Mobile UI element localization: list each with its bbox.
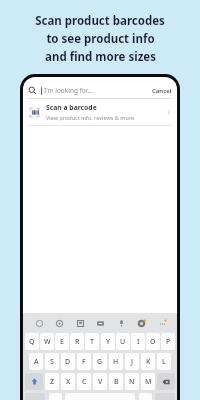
- button[interactable]: K: [141, 353, 155, 370]
- staticText: Scan a barcode: [46, 103, 97, 112]
- staticText: J: [131, 357, 134, 367]
- staticText: Y: [106, 337, 111, 347]
- button[interactable]: Backspace: [157, 373, 175, 390]
- staticText: I: [137, 337, 140, 347]
- button[interactable]: X: [61, 373, 75, 390]
- button[interactable]: Voice input: [114, 316, 128, 330]
- button[interactable]: Stickers: [73, 316, 87, 330]
- button[interactable]: R: [70, 333, 84, 350]
- staticText: B: [114, 377, 119, 387]
- button[interactable]: E: [55, 333, 69, 350]
- button[interactable]: M: [141, 373, 155, 390]
- button[interactable]: Scan a barcode: [28, 99, 172, 125]
- button[interactable]: C: [77, 373, 91, 390]
- button[interactable]: V: [93, 373, 107, 390]
- button[interactable]: T: [85, 333, 99, 350]
- button[interactable]: U: [116, 333, 130, 350]
- staticText: and find more sizes: [45, 49, 156, 65]
- button[interactable]: Shift: [25, 373, 43, 390]
- staticText: N: [129, 377, 135, 387]
- staticText: View product info, reviews & more: [46, 114, 135, 121]
- button[interactable]: Voice typing: [32, 316, 46, 330]
- staticText: S: [50, 357, 54, 367]
- staticText: Q: [29, 337, 35, 347]
- staticText: A: [34, 357, 39, 367]
- staticText: F: [82, 357, 86, 367]
- staticText: O: [150, 337, 156, 347]
- other: Search: [28, 86, 37, 95]
- staticText: P: [166, 337, 171, 347]
- staticText: U: [120, 337, 126, 347]
- staticText: Scan product barcodes: [35, 13, 165, 29]
- button[interactable]: F: [77, 353, 91, 370]
- button[interactable]: Z: [45, 373, 59, 390]
- staticText: V: [98, 377, 103, 387]
- button[interactable]: N: [125, 373, 139, 390]
- other: Scan a barcode: [28, 106, 41, 119]
- button[interactable]: G: [93, 353, 107, 370]
- button[interactable]: Settings: [134, 316, 148, 330]
- staticText: to see product info: [46, 31, 155, 47]
- button[interactable]: Search: [28, 83, 172, 98]
- button[interactable]: J: [125, 353, 139, 370]
- button[interactable]: Emoji: [52, 316, 66, 330]
- staticText: W: [44, 337, 51, 347]
- button[interactable]: P: [161, 333, 175, 350]
- staticText: Z: [50, 377, 55, 387]
- staticText: I'm looking for...: [44, 86, 93, 95]
- button[interactable]: L: [157, 353, 171, 370]
- button[interactable]: A: [29, 353, 43, 370]
- button[interactable]: D: [61, 353, 75, 370]
- button[interactable]: Y: [101, 333, 115, 350]
- staticText: D: [65, 357, 71, 367]
- staticText: T: [90, 337, 94, 347]
- staticText: Cancel: [152, 87, 172, 95]
- button[interactable]: B: [109, 373, 123, 390]
- button[interactable]: W: [40, 333, 54, 350]
- staticText: R: [75, 337, 80, 347]
- staticText: C: [82, 377, 87, 387]
- button[interactable]: GIF: [93, 316, 107, 330]
- staticText: M: [145, 377, 152, 387]
- button[interactable]: I: [131, 333, 145, 350]
- staticText: E: [60, 337, 64, 347]
- staticText: L: [162, 357, 166, 367]
- staticText: K: [146, 357, 151, 367]
- button[interactable]: More options: [155, 316, 169, 330]
- button[interactable]: H: [109, 353, 123, 370]
- button[interactable]: Q: [25, 333, 39, 350]
- button[interactable]: S: [45, 353, 59, 370]
- staticText: G: [97, 357, 103, 367]
- staticText: X: [66, 377, 71, 387]
- button[interactable]: O: [146, 333, 160, 350]
- staticText: H: [113, 357, 119, 367]
